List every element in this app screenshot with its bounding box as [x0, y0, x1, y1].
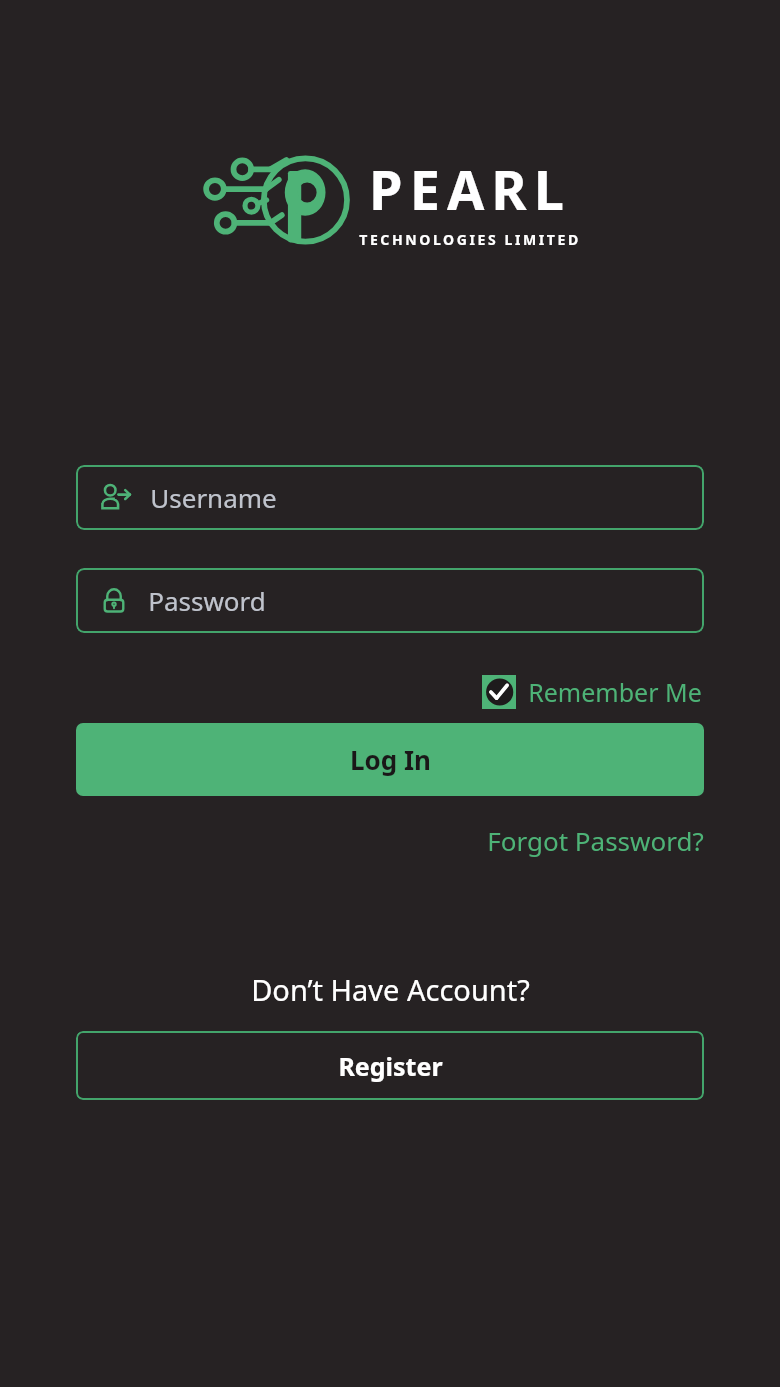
staticText: Register — [338, 1049, 443, 1083]
button[interactable]: Forgot Password? — [481, 819, 710, 862]
button[interactable]: Register — [76, 1031, 704, 1100]
staticText: Forgot Password? — [487, 823, 704, 858]
staticText: Remember Me — [528, 675, 702, 709]
staticText: Don’t Have Account? — [251, 970, 530, 1009]
staticText: PEARL — [369, 152, 571, 226]
button[interactable]: Log In — [76, 723, 704, 796]
other: Password — [98, 585, 130, 617]
staticText: TECHNOLOGIES LIMITED — [359, 230, 581, 249]
other: Remember Me checkbox — [482, 675, 516, 709]
staticText: Log In — [350, 742, 431, 777]
staticText: Password — [148, 583, 266, 618]
button[interactable]: Remember Me checkbox — [480, 673, 704, 711]
other: Username — [98, 481, 132, 515]
button[interactable]: Password — [76, 568, 704, 633]
button[interactable]: Username — [76, 465, 704, 530]
staticText: Username — [150, 480, 277, 515]
other: Pearl Technologies logo — [199, 148, 351, 252]
